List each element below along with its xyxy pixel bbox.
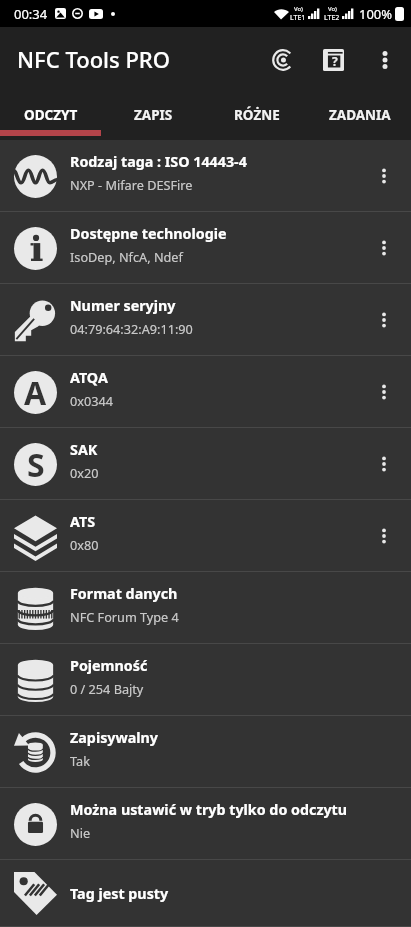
staticText: 04:79:64:32:A9:11:90: [70, 320, 193, 337]
button[interactable]: Row options: [357, 212, 411, 284]
button[interactable]: Pojemność: [0, 644, 411, 716]
staticText: 0x20: [70, 464, 99, 481]
staticText: Vo): [328, 5, 337, 13]
staticText: Tag jest pusty: [70, 884, 169, 903]
button[interactable]: Można ustawić w tryb tylko do odczytu: [0, 788, 411, 860]
button[interactable]: ATS: [0, 500, 411, 572]
staticText: ODCZYT: [24, 106, 78, 124]
button[interactable]: Help: [308, 34, 359, 85]
staticText: Pojemność: [70, 656, 148, 675]
staticText: A: [24, 371, 47, 414]
button[interactable]: NFC: [257, 34, 308, 85]
button[interactable]: Numer seryjny: [0, 284, 411, 356]
staticText: 0x80: [70, 536, 99, 553]
staticText: Nie: [70, 824, 91, 841]
button[interactable]: Format danych: [0, 572, 411, 644]
staticText: 0x0344: [70, 392, 113, 409]
button[interactable]: ZAPIS: [102, 91, 205, 130]
staticText: ZAPIS: [134, 106, 173, 124]
staticText: 100%: [359, 5, 393, 23]
button[interactable]: Row options: [357, 500, 411, 572]
button[interactable]: A: [0, 356, 411, 428]
staticText: Rodzaj taga : ISO 14443-4: [70, 152, 247, 171]
staticText: NFC Forum Type 4: [70, 608, 179, 625]
button[interactable]: Row options: [357, 284, 411, 356]
button[interactable]: Dostępne technologie: [0, 212, 411, 284]
button[interactable]: Tag jest pusty: [0, 860, 411, 927]
staticText: LTE1: [290, 13, 306, 23]
button[interactable]: ODCZYT: [0, 91, 102, 130]
button[interactable]: Rodzaj taga : ISO 14443-4: [0, 140, 411, 212]
button[interactable]: RÓŻNE: [205, 91, 308, 130]
button[interactable]: ZADANIA: [308, 91, 411, 130]
button[interactable]: Row options: [357, 356, 411, 428]
staticText: ZADANIA: [329, 106, 391, 124]
staticText: Zapisywalny: [70, 728, 159, 747]
staticText: 00:34: [14, 5, 48, 23]
staticText: Numer seryjny: [70, 296, 176, 315]
staticText: Format danych: [70, 584, 178, 603]
staticText: RÓŻNE: [234, 106, 280, 124]
staticText: Dostępne technologie: [70, 224, 227, 243]
button[interactable]: Zapisywalny: [0, 716, 411, 788]
button[interactable]: S: [0, 428, 411, 500]
staticText: ATQA: [70, 368, 108, 387]
staticText: IsoDep, NfcA, Ndef: [70, 248, 183, 265]
staticText: SAK: [70, 440, 98, 459]
button[interactable]: Row options: [357, 140, 411, 212]
staticText: NFC Tools PRO: [17, 44, 171, 74]
staticText: NXP - Mifare DESFire: [70, 176, 193, 193]
button[interactable]: Row options: [357, 428, 411, 500]
staticText: S: [27, 443, 45, 486]
staticText: ATS: [70, 512, 96, 531]
staticText: LTE2: [324, 13, 340, 23]
staticText: ?: [332, 53, 338, 69]
staticText: Można ustawić w tryb tylko do odczytu: [70, 800, 348, 819]
staticText: Vo): [294, 5, 303, 13]
staticText: 0 / 254 Bajty: [70, 680, 144, 697]
staticText: Tak: [70, 752, 90, 769]
button[interactable]: More options: [359, 34, 410, 85]
